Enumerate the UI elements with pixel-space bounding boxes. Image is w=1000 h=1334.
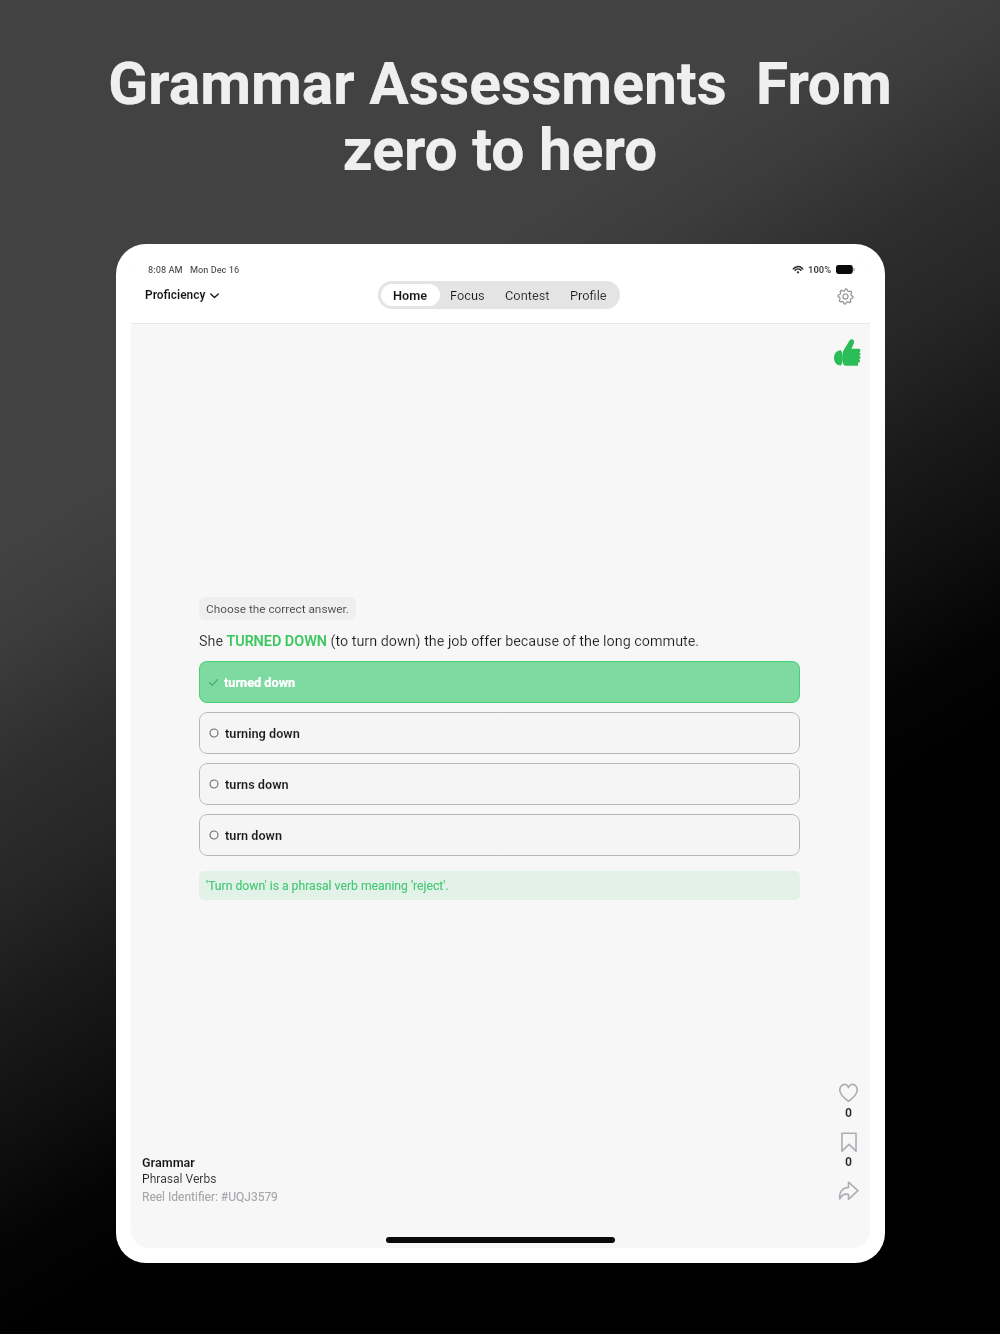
button[interactable]: Home — [381, 284, 440, 306]
staticText: turn down — [225, 828, 283, 843]
button[interactable]: turn down — [199, 814, 800, 856]
button[interactable]: Share — [836, 1178, 861, 1203]
staticText: Home — [393, 288, 428, 303]
staticText: Contest — [505, 288, 550, 303]
staticText: turned down — [224, 675, 296, 690]
staticText: turns down — [225, 777, 289, 792]
button[interactable]: Profile — [560, 284, 617, 306]
staticText: Grammar — [142, 1155, 195, 1170]
button[interactable]: Like — [836, 1080, 861, 1120]
staticText: Reel Identifier: #UQJ3579 — [142, 1190, 278, 1204]
button[interactable]: Contest — [495, 284, 560, 306]
button[interactable]: Settings — [834, 285, 856, 307]
button[interactable]: Bookmark — [836, 1129, 861, 1169]
button[interactable]: Like reaction — [834, 339, 861, 366]
staticText: 0 — [845, 1155, 852, 1169]
button[interactable]: turned down — [199, 661, 800, 703]
staticText: Mon Dec 16 — [190, 264, 240, 275]
staticText: Choose the correct answer. — [206, 602, 349, 616]
staticText: 100% — [808, 264, 832, 275]
staticText: 'Turn down' is a phrasal verb meaning 'r… — [206, 879, 449, 893]
staticText: 8:08 AM — [148, 264, 183, 275]
staticText: Profile — [570, 288, 607, 303]
staticText: Phrasal Verbs — [142, 1172, 217, 1186]
staticText: She TURNED DOWN (to turn down) the job o… — [199, 633, 700, 650]
staticText: Proficiency — [145, 288, 206, 302]
staticText: Grammar Assessments From zero to hero — [50, 50, 950, 185]
staticText: turning down — [225, 726, 300, 741]
button[interactable]: Focus — [440, 284, 495, 306]
button[interactable]: turning down — [199, 712, 800, 754]
staticText: 0 — [845, 1106, 852, 1120]
staticText: Focus — [450, 288, 485, 303]
button[interactable]: turns down — [199, 763, 800, 805]
button[interactable]: Proficiency — [143, 286, 223, 304]
